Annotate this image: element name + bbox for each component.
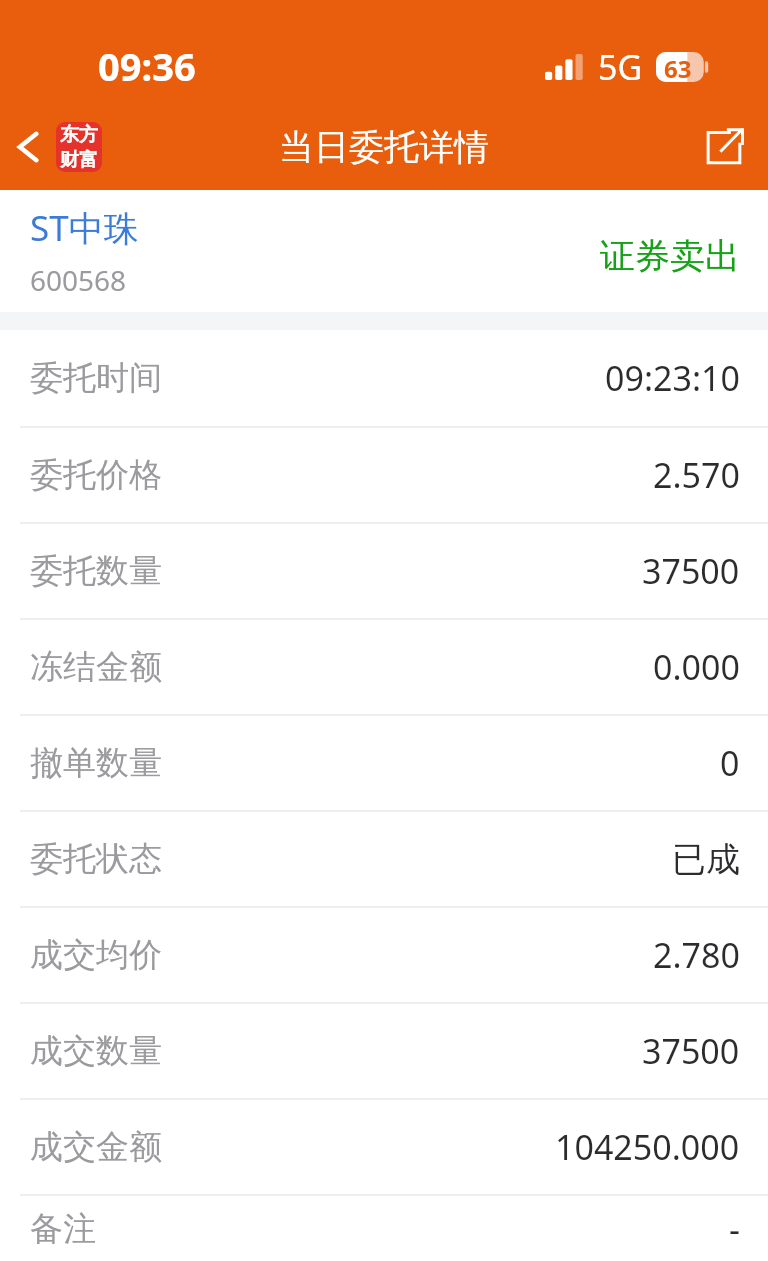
button[interactable]: 成交金额 (0, 1100, 768, 1194)
staticText: 撤单数量 (30, 742, 162, 784)
staticText: 37500 (642, 1028, 740, 1074)
staticText: 2.570 (653, 452, 740, 498)
staticText: 证券卖出 (600, 234, 740, 278)
staticText: 0 (720, 740, 740, 786)
button[interactable]: 委托时间 (0, 330, 768, 426)
staticText: 0.000 (653, 644, 740, 690)
staticText: 成交均价 (30, 934, 162, 976)
staticText: 委托价格 (30, 454, 162, 496)
button[interactable]: Share (680, 111, 768, 183)
staticText: 成交数量 (30, 1030, 162, 1072)
button[interactable]: 成交均价 (0, 908, 768, 1002)
staticText: 委托状态 (30, 838, 162, 880)
button[interactable]: 备注 (0, 1196, 768, 1261)
staticText: 备注 (30, 1208, 96, 1250)
button[interactable]: 成交数量 (0, 1004, 768, 1098)
staticText: 37500 (642, 548, 740, 594)
staticText: 5G (598, 44, 643, 90)
button[interactable]: 委托状态 (0, 812, 768, 906)
button[interactable]: 冻结金额 (0, 620, 768, 714)
staticText: 600568 (30, 261, 127, 299)
staticText: ST中珠 (30, 204, 139, 252)
staticText: 东方 (60, 123, 98, 147)
staticText: 当日委托详情 (279, 125, 489, 169)
staticText: 成交金额 (30, 1126, 162, 1168)
staticText: 财富 (60, 148, 98, 172)
staticText: 委托时间 (30, 357, 162, 399)
staticText: 09:36 (98, 40, 196, 92)
staticText: 104250.000 (555, 1124, 740, 1170)
staticText: 冻结金额 (30, 646, 162, 688)
staticText: 09:23:10 (605, 355, 740, 401)
staticText: 63 (664, 52, 692, 82)
staticText: 已成 (672, 838, 740, 881)
staticText: 2.780 (653, 932, 740, 978)
button[interactable]: 委托价格 (0, 428, 768, 522)
button[interactable]: Back (0, 114, 114, 180)
button[interactable]: ST中珠 (0, 190, 768, 312)
button[interactable]: 委托数量 (0, 524, 768, 618)
staticText: - (729, 1206, 740, 1252)
button[interactable]: 撤单数量 (0, 716, 768, 810)
staticText: 委托数量 (30, 550, 162, 592)
